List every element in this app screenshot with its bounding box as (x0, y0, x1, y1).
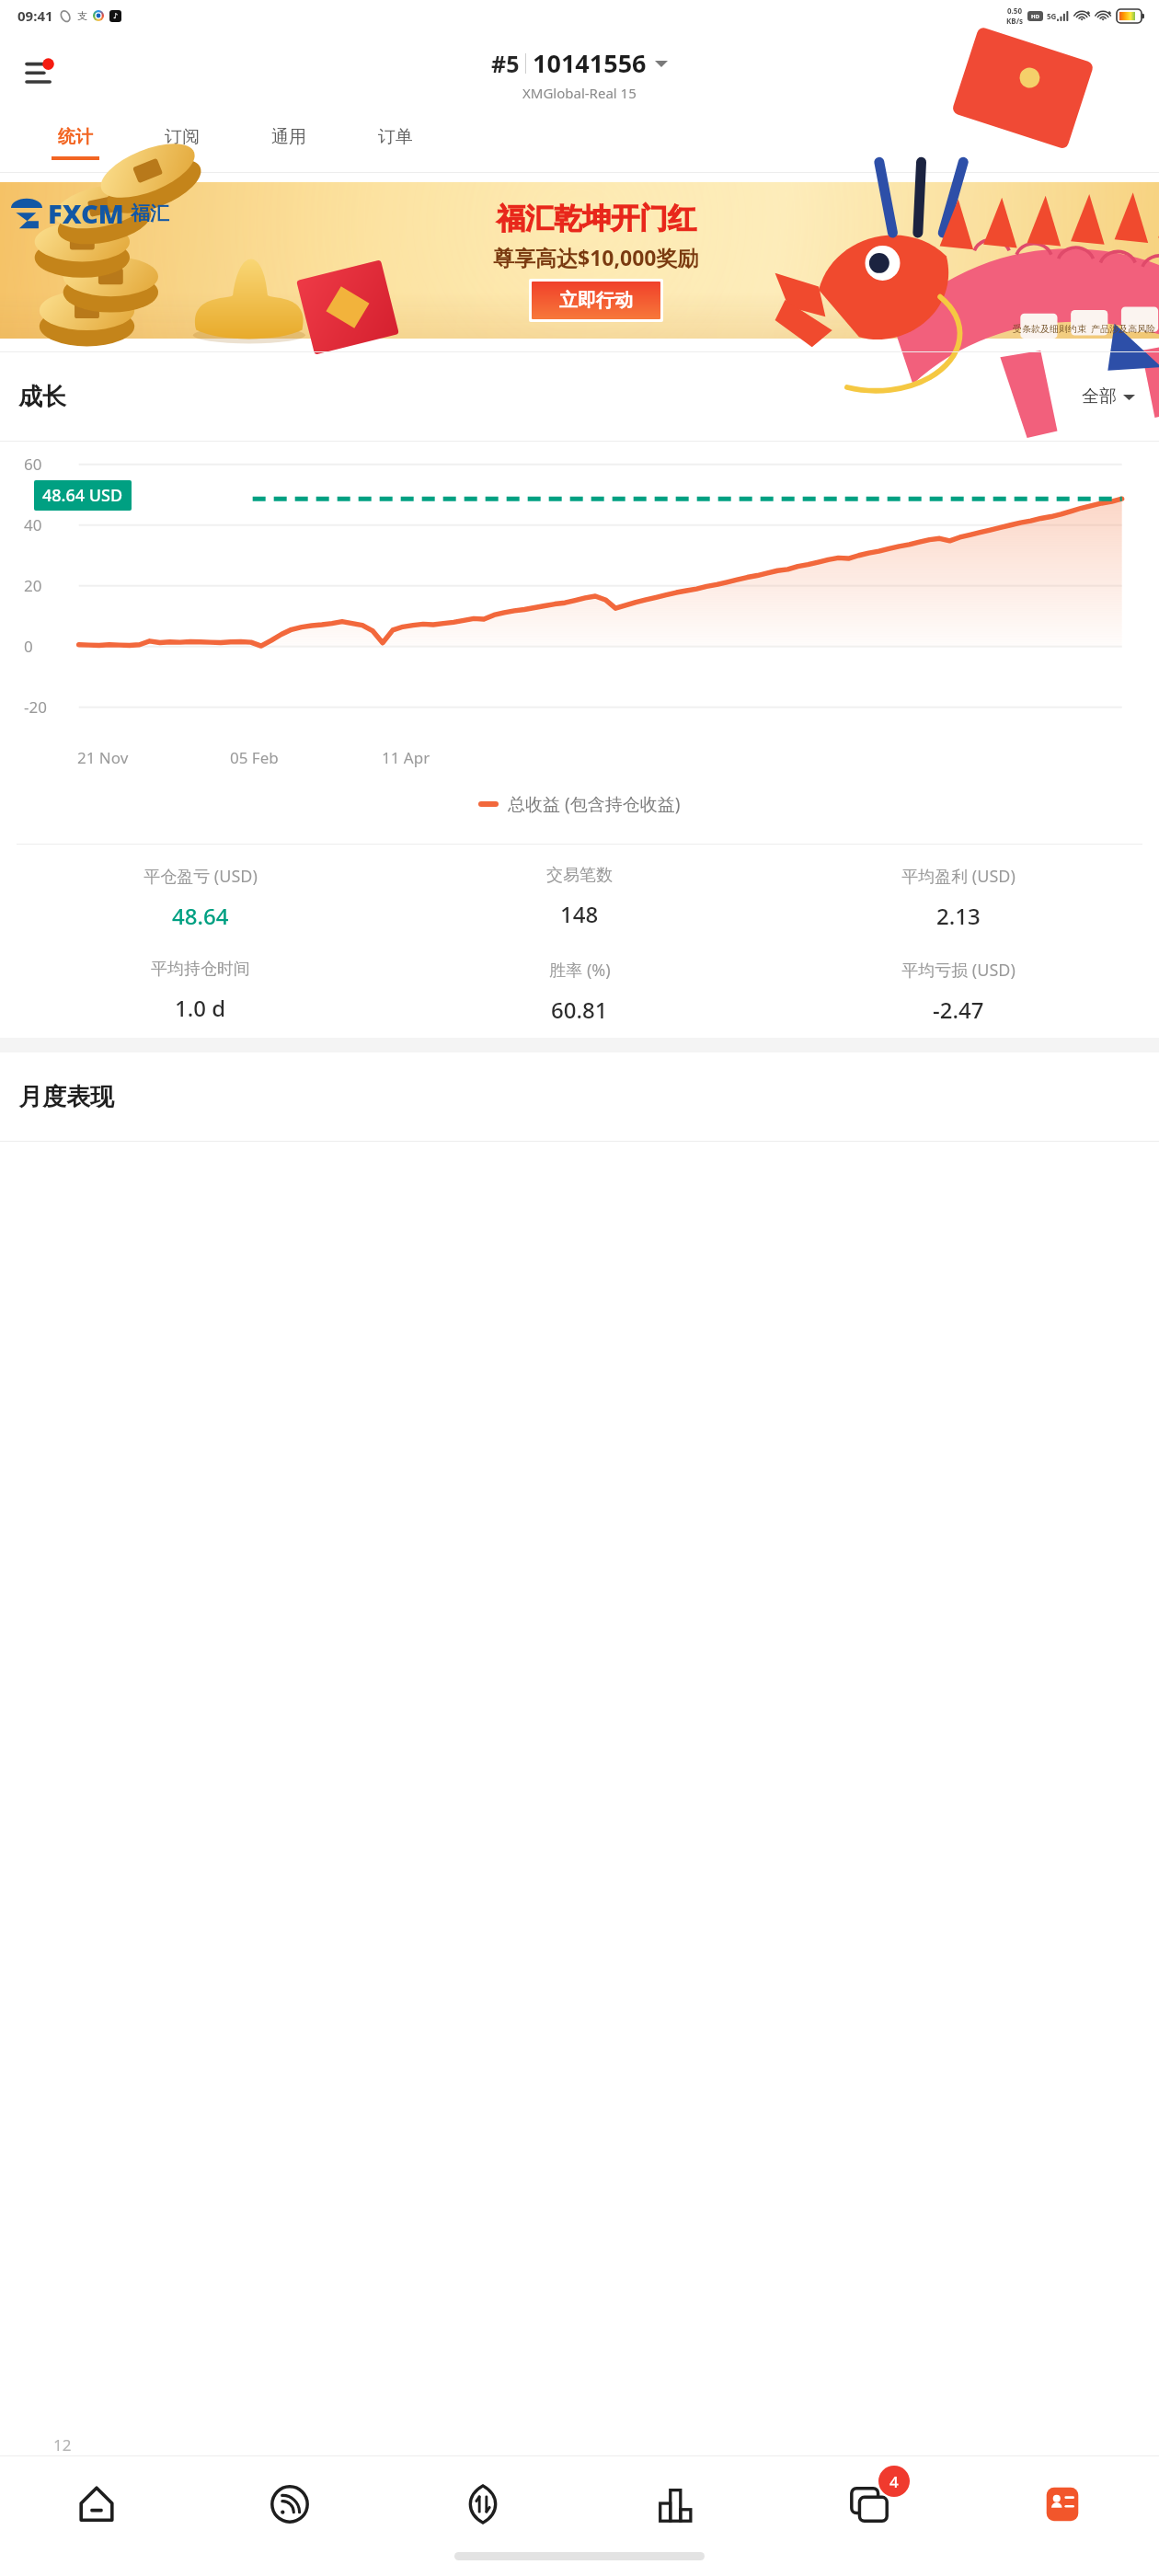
button[interactable]: Menu (20, 46, 72, 98)
button[interactable]: Signals (193, 2456, 386, 2552)
staticText: 60 (24, 454, 42, 475)
staticText: #5 (491, 48, 520, 79)
staticText: XMGlobal-Real 15 (522, 84, 637, 102)
staticText: 48.64 USD (42, 484, 123, 507)
staticText: 平均盈利 (USD) (901, 865, 1016, 888)
staticText: 12 (53, 2434, 72, 2455)
button[interactable]: 平仓盈亏 (USD) (11, 865, 390, 931)
staticText: 尊享高达$10,000奖励 (493, 243, 699, 271)
staticText: 平仓盈亏 (USD) (143, 865, 258, 888)
staticText: 2.13 (936, 901, 981, 931)
staticText: 21 Nov (77, 747, 129, 768)
button[interactable]: 平均盈利 (USD) (769, 865, 1148, 931)
staticText: 48.64 (172, 901, 229, 931)
button[interactable]: 平均亏损 (USD) (769, 959, 1148, 1025)
staticText: 1.0 d (175, 993, 226, 1023)
button[interactable]: 胜率 (%) (390, 959, 769, 1025)
button[interactable]: 平均持仓时间 (11, 959, 390, 1023)
button[interactable]: 全部 (1076, 380, 1141, 413)
staticText: FXCM (48, 195, 124, 231)
staticText: 订单 (378, 126, 413, 148)
staticText: 月度表现 (18, 1082, 114, 1112)
button[interactable]: Trade (386, 2456, 579, 2552)
staticText: 10141556 (533, 46, 647, 80)
button[interactable]: 交易笔数 (390, 865, 769, 929)
staticText: 福汇乾坤开门红 (497, 201, 696, 236)
staticText: KB/s (1006, 16, 1023, 26)
staticText: 05 Feb (230, 747, 279, 768)
staticText: -2.47 (933, 995, 984, 1025)
button[interactable]: Accounts (966, 2456, 1159, 2552)
staticText: ♪ (113, 12, 119, 20)
staticText: HD (1031, 13, 1039, 20)
staticText: 20 (24, 575, 42, 596)
staticText: 通用 (271, 126, 306, 148)
staticText: 立即行动 (559, 289, 633, 312)
staticText: 0.50 (1007, 6, 1022, 16)
staticText: 受条款及细则约束 产品涉及高风险 (1013, 322, 1156, 335)
staticText: 福汇 (131, 201, 169, 225)
staticText: 5G (1047, 11, 1057, 21)
staticText: 0 (24, 636, 33, 657)
button[interactable]: Home (0, 2456, 193, 2552)
button[interactable]: 立即行动 (532, 282, 660, 319)
staticText: 支 (77, 9, 87, 22)
staticText: 全部 (1082, 385, 1117, 408)
staticText: 09:41 (17, 6, 53, 25)
staticText: 总收益 (包含持仓收益) (508, 792, 681, 816)
staticText: 交易笔数 (546, 865, 613, 886)
button[interactable]: 订阅 (129, 113, 235, 172)
button[interactable]: Messages (773, 2456, 966, 2552)
button[interactable]: 通用 (235, 113, 342, 172)
staticText: -20 (24, 696, 47, 718)
staticText: 统计 (58, 126, 93, 148)
staticText: 订阅 (165, 126, 200, 148)
staticText: 40 (24, 514, 42, 535)
staticText: 平均亏损 (USD) (901, 959, 1016, 982)
staticText: 60.81 (551, 995, 608, 1025)
button[interactable]: 订单 (342, 113, 449, 172)
staticText: 4 (889, 2471, 899, 2492)
staticText: 成长 (18, 382, 66, 412)
button[interactable]: 统计 (22, 113, 129, 172)
staticText: 平均持仓时间 (151, 959, 250, 980)
staticText: 胜率 (%) (549, 959, 611, 982)
staticText: 148 (560, 899, 599, 929)
button[interactable]: History (579, 2456, 773, 2552)
staticText: 11 Apr (382, 747, 430, 768)
button[interactable]: FXCM promotion banner (0, 182, 1159, 339)
